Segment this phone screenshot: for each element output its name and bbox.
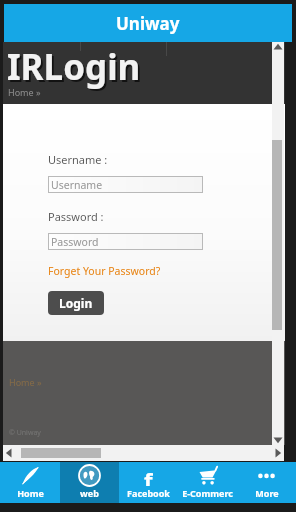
button[interactable]: Password [48,233,203,250]
staticText: f [144,465,153,486]
button[interactable]: E-Commerc [178,462,237,503]
button[interactable]: Home » [8,86,41,98]
button[interactable]: web [60,462,119,503]
button[interactable]: Home [0,462,60,503]
staticText: Login [59,295,93,311]
button[interactable]: More [237,462,296,503]
staticText: Home [17,487,44,499]
staticText: web [80,487,99,499]
staticText: E-Commerc [182,487,233,499]
staticText: IRLogin [7,43,141,91]
staticText: Password [51,235,99,249]
staticText: Home » [9,376,42,388]
staticText: More [255,487,279,499]
staticText: Username [51,178,103,192]
button[interactable]: Uniway [4,4,292,42]
button[interactable]: Login [48,291,104,315]
staticText: © Uniway [9,428,41,438]
button[interactable]: f [119,462,178,503]
staticText: Facebook [127,487,170,499]
staticText: IRLogin [9,45,143,93]
staticText: Password : [48,209,104,224]
staticText: Username : [48,152,108,167]
button[interactable]: Username [48,176,203,193]
button[interactable]: Forget Your Password? [48,264,161,278]
staticText: Uniway [116,12,180,35]
